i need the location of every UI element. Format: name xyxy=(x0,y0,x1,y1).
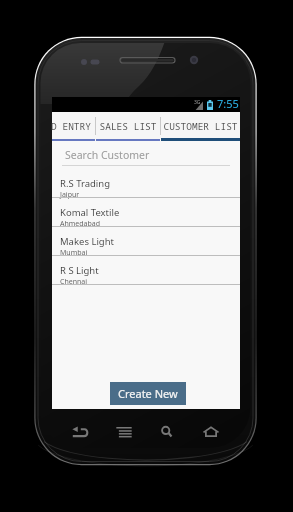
button[interactable]: Back xyxy=(66,417,94,445)
button[interactable]: CUSTOMER LIST xyxy=(161,112,240,141)
button[interactable]: Menu xyxy=(110,417,138,445)
button[interactable]: Search xyxy=(153,417,181,445)
staticText: 7:55 xyxy=(217,96,239,111)
staticText: Mumbai xyxy=(60,248,88,258)
button[interactable]: SALES LIST xyxy=(96,112,160,141)
staticText: 3G xyxy=(194,99,201,106)
staticText: R S Light xyxy=(60,264,99,277)
staticText: Ahmedabad xyxy=(60,219,101,229)
staticText: D ENTRY xyxy=(51,120,91,133)
button[interactable]: D ENTRY xyxy=(52,112,95,141)
button[interactable]: R S Light xyxy=(52,256,240,285)
staticText: Search Customer xyxy=(65,148,150,162)
staticText: Chennai xyxy=(60,277,88,287)
button[interactable]: Makes Light xyxy=(52,227,240,256)
staticText: Makes Light xyxy=(60,235,114,248)
staticText: Komal Textile xyxy=(60,206,120,219)
button[interactable]: Create New xyxy=(110,382,186,405)
staticText: SALES LIST xyxy=(99,120,157,133)
button[interactable]: Komal Textile xyxy=(52,198,240,227)
staticText: CUSTOMER LIST xyxy=(163,120,238,133)
staticText: Jaipur xyxy=(60,190,80,200)
staticText: R.S Trading xyxy=(60,177,111,190)
button[interactable]: R.S Trading xyxy=(52,169,240,198)
button[interactable]: Home xyxy=(197,417,225,445)
staticText: Create New xyxy=(118,386,178,401)
